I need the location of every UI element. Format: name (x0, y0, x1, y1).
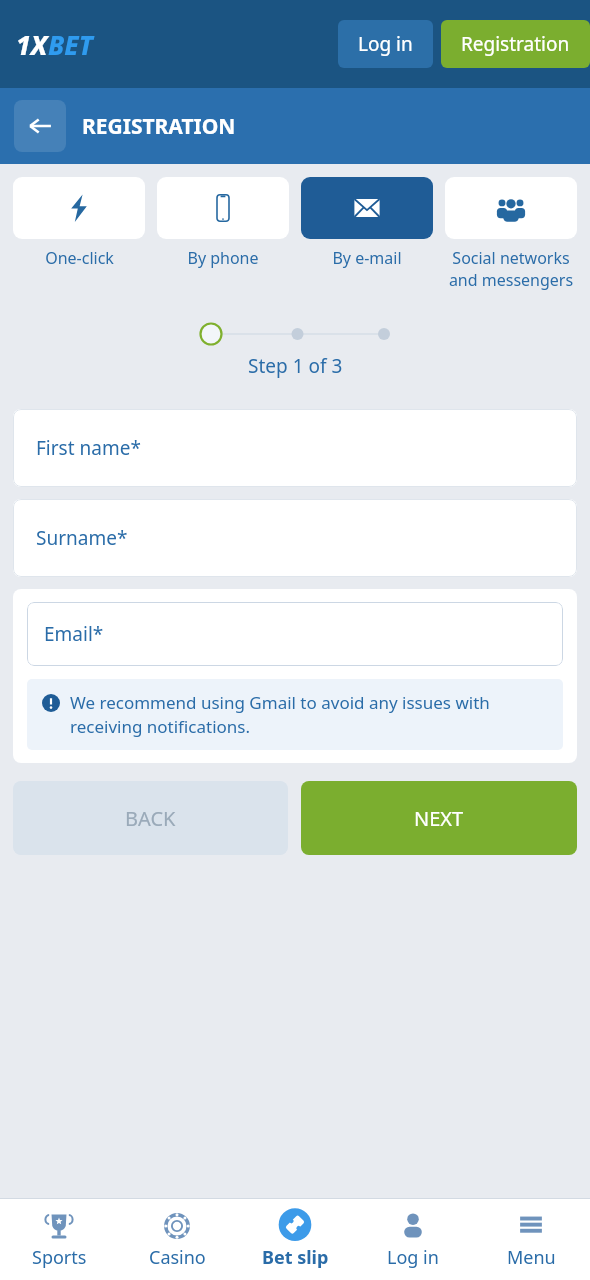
button[interactable]: Menu (472, 1199, 590, 1280)
button[interactable]: Surname* (13, 499, 577, 577)
button[interactable]: By phone (157, 177, 289, 269)
button[interactable]: Sports (0, 1199, 118, 1280)
button[interactable]: By e-mail (301, 177, 433, 269)
button[interactable]: Casino (118, 1199, 236, 1280)
staticText: Log in (387, 1245, 439, 1270)
button[interactable]: Registration (441, 20, 590, 68)
button[interactable]: Log in (338, 20, 433, 68)
staticText: Menu (507, 1245, 556, 1270)
button[interactable]: NEXT (301, 781, 577, 855)
staticText: Social networks and messengers (445, 247, 577, 291)
staticText: First name* (36, 435, 141, 461)
staticText: REGISTRATION (82, 112, 236, 141)
button[interactable]: First name* (13, 409, 577, 487)
button[interactable]: Bet slip (236, 1199, 354, 1280)
staticText: BACK (125, 805, 176, 832)
staticText: Step 1 of 3 (248, 353, 343, 379)
staticText: Email* (44, 621, 104, 647)
staticText: Sports (32, 1245, 87, 1270)
button[interactable]: BACK (13, 781, 288, 855)
staticText: Surname* (36, 525, 128, 551)
button[interactable]: Social networks and messengers (445, 177, 577, 291)
button[interactable]: Email* (27, 602, 563, 666)
button[interactable]: One-click (13, 177, 145, 269)
staticText: By e-mail (332, 247, 402, 269)
staticText: 1X (16, 27, 48, 62)
staticText: Registration (461, 31, 570, 57)
staticText: One-click (45, 247, 114, 269)
staticText: By phone (187, 247, 259, 269)
button[interactable]: Back (14, 100, 66, 152)
staticText: BET (48, 27, 93, 62)
staticText: We recommend using Gmail to avoid any is… (70, 691, 549, 738)
button[interactable]: Log in (354, 1199, 472, 1280)
staticText: NEXT (414, 805, 464, 832)
staticText: Casino (149, 1245, 206, 1270)
staticText: Bet slip (262, 1245, 329, 1270)
staticText: Log in (358, 31, 413, 57)
